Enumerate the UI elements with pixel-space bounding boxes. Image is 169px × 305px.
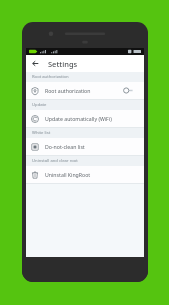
button[interactable]: Root authorization toggle [123,86,139,95]
staticText: Uninstall KingRoot [45,171,139,178]
staticText: Do-not-clean list [45,143,139,150]
staticText: Update [32,102,47,108]
staticText: Root authorization [45,87,123,94]
staticText: Settings [48,59,78,69]
button[interactable]: Update automatically (WiFi) [26,110,144,127]
button[interactable]: Back [29,57,42,70]
staticText: Uninstall and clear root [32,158,78,164]
staticText: Update automatically (WiFi) [45,115,139,122]
button[interactable]: Do-not-clean list [26,138,144,155]
staticText: Root authorization [32,74,69,80]
button[interactable]: Uninstall KingRoot [26,166,144,183]
button[interactable]: Root authorization [26,82,144,99]
staticText: White list [32,130,51,136]
